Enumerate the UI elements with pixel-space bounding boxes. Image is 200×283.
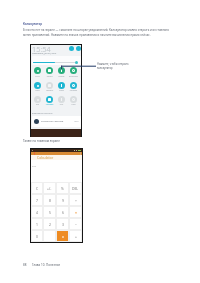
button[interactable]: NFC xyxy=(58,96,65,103)
staticText: DEL xyxy=(72,186,79,191)
button[interactable]: Eye xyxy=(34,96,41,103)
button[interactable]: 1 xyxy=(31,218,43,230)
staticText: 2 xyxy=(49,222,51,227)
staticText: Cast xyxy=(68,103,79,106)
staticText: NFC xyxy=(56,103,67,106)
staticText: Sound xyxy=(44,75,55,78)
staticText: × xyxy=(75,210,77,215)
button[interactable]: ÷ xyxy=(69,194,82,206)
button[interactable]: More options xyxy=(79,152,82,155)
staticText: Eye xyxy=(32,103,43,106)
staticText: − xyxy=(75,222,77,227)
button[interactable]: Cast xyxy=(70,96,77,103)
staticText: Data xyxy=(32,89,43,92)
staticText: Нажмите, чтобы открыть xyxy=(97,62,129,66)
button[interactable]: DEL xyxy=(69,182,82,194)
button[interactable]: 8 xyxy=(43,194,56,206)
button[interactable]: Location xyxy=(70,82,77,89)
staticText: Screenshot captured. xyxy=(41,120,64,123)
button[interactable]: C xyxy=(31,182,43,194)
button[interactable]: Settings xyxy=(69,46,74,51)
staticText: 7 xyxy=(36,198,38,203)
staticText: 4 xyxy=(36,210,38,215)
staticText: калькулятор xyxy=(97,66,113,70)
staticText: Также на главном экране xyxy=(23,139,60,143)
staticText: 3 xyxy=(62,222,64,227)
button[interactable]: 7 xyxy=(31,194,43,206)
staticText: Wi-Fi xyxy=(32,75,43,78)
button[interactable]: Hotspot xyxy=(46,82,53,89)
button[interactable]: = xyxy=(56,230,69,242)
staticText: 15:54 xyxy=(32,45,51,55)
staticText: 88 xyxy=(23,263,27,267)
staticText: 5 xyxy=(49,210,51,215)
button[interactable]: Airplane xyxy=(46,96,53,103)
button[interactable]: +/- xyxy=(43,182,56,194)
button[interactable] xyxy=(43,230,56,242)
button[interactable]: Sound xyxy=(46,67,53,74)
button[interactable]: 6 xyxy=(56,206,69,218)
button[interactable]: Bluetooth xyxy=(70,67,77,74)
button[interactable]: 3 xyxy=(56,218,69,230)
button[interactable]: 2 xyxy=(43,218,56,230)
button[interactable]: + xyxy=(69,230,82,242)
button[interactable]: User profile xyxy=(76,46,81,51)
staticText: Emergency calls only xyxy=(32,112,53,115)
staticText: % xyxy=(61,186,64,191)
button[interactable]: Rotate xyxy=(58,67,65,74)
staticText: +/- xyxy=(47,186,52,191)
button[interactable]: 9 xyxy=(56,194,69,206)
button[interactable]: − xyxy=(69,218,82,230)
staticText: 15:51 xyxy=(74,120,79,122)
staticText: Airplane xyxy=(44,103,55,106)
staticText: Если его нет на экране — смахните по што… xyxy=(23,28,176,37)
staticText: Rotate xyxy=(56,75,67,78)
button[interactable]: 4 xyxy=(31,206,43,218)
staticText: 840 xyxy=(32,164,37,167)
button[interactable]: Wi-Fi xyxy=(34,67,41,74)
staticText: C xyxy=(36,186,39,191)
button[interactable]: Flash xyxy=(58,82,65,89)
staticText: Hotspot xyxy=(44,89,55,92)
staticText: Калькулятор xyxy=(23,22,43,26)
staticText: Location xyxy=(68,89,79,92)
staticText: 1 xyxy=(36,222,38,227)
staticText: Wednesday, Jan 23, 2019 xyxy=(32,52,57,55)
button[interactable]: × xyxy=(69,206,82,218)
button[interactable]: % xyxy=(56,182,69,194)
staticText: ÷ xyxy=(75,198,77,203)
staticText: Flash xyxy=(56,89,67,92)
staticText: 6 xyxy=(62,210,64,215)
button[interactable]: 5 xyxy=(43,206,56,218)
staticText: 8 xyxy=(49,198,51,203)
staticText: 9 xyxy=(62,198,64,203)
staticText: + xyxy=(75,234,77,239)
button[interactable]: Screenshot captured. xyxy=(32,116,81,127)
button[interactable]: 0 xyxy=(31,230,43,242)
button[interactable]: Data xyxy=(34,82,41,89)
staticText: Calculator xyxy=(37,155,54,160)
staticText: Bluetooth xyxy=(68,75,79,78)
button[interactable]: Back xyxy=(33,152,36,155)
staticText: Глава 10. Полезное xyxy=(32,263,61,267)
staticText: 0 xyxy=(36,234,38,239)
staticText: = xyxy=(62,234,64,239)
